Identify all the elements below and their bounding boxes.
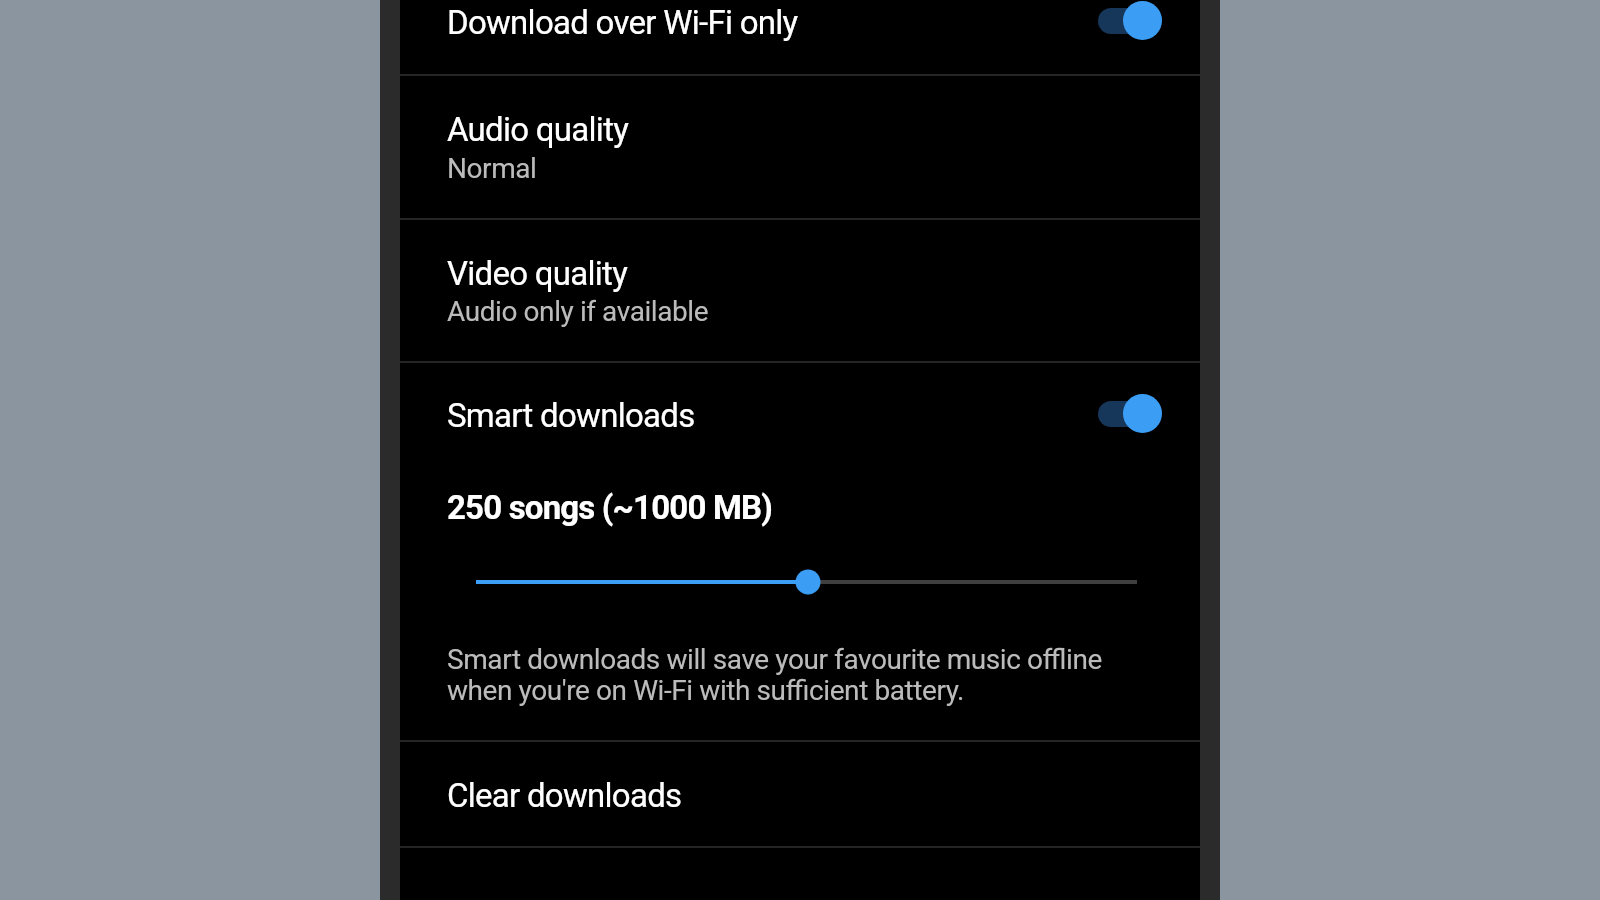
button[interactable]: Audio quality, Normal <box>400 75 1200 218</box>
button[interactable]: Clear downloads <box>400 741 1200 846</box>
staticText: Audio quality <box>447 110 629 149</box>
button[interactable]: Smart downloads <box>400 362 1200 740</box>
staticText: Clear downloads <box>447 776 682 815</box>
staticText: Audio only if available <box>447 295 709 328</box>
staticText: Video quality <box>447 254 628 293</box>
button[interactable]: Download over Wi-Fi only <box>400 0 1200 74</box>
button[interactable]: Smart downloads <box>1074 386 1188 442</box>
staticText: Normal <box>447 152 537 185</box>
button[interactable]: Download over Wi-Fi only <box>1074 0 1188 49</box>
staticText: when you're on Wi-Fi with sufficient bat… <box>447 674 965 707</box>
staticText: Smart downloads will save your favourite… <box>447 643 1102 676</box>
button[interactable]: Smart downloads size <box>400 558 1200 606</box>
staticText: Download over Wi-Fi only <box>447 3 798 42</box>
staticText: Smart downloads <box>447 396 695 435</box>
staticText: 250 songs (~1000 MB) <box>447 488 772 527</box>
button[interactable]: Video quality, Audio only if available <box>400 219 1200 361</box>
